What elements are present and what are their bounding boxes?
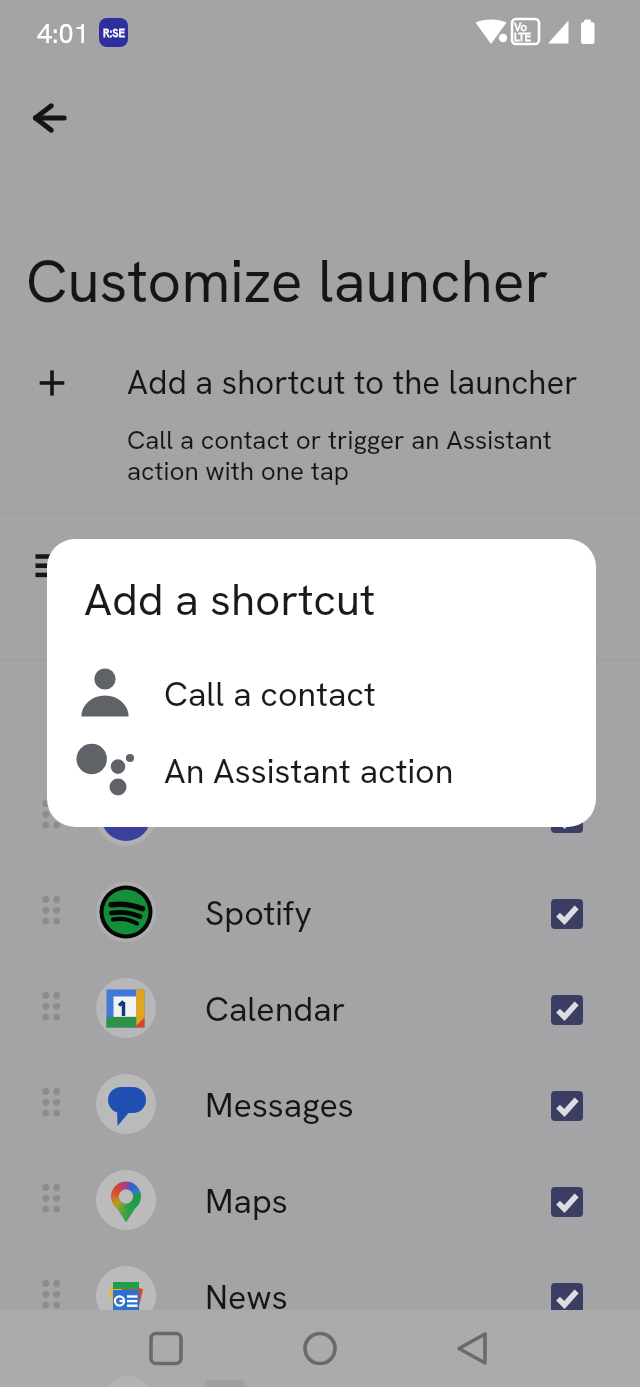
button[interactable]: Toggle xyxy=(0,768,640,864)
button[interactable]: Toggle xyxy=(551,803,583,833)
staticText: Maps xyxy=(205,1179,288,1223)
button[interactable]: Toggle Messages xyxy=(551,1091,583,1121)
button[interactable]: Messages xyxy=(0,1056,640,1152)
staticText: Calendar xyxy=(205,987,346,1031)
button[interactable]: Call a contact xyxy=(47,655,596,732)
button[interactable]: Toggle Calendar xyxy=(551,995,583,1025)
button[interactable]: Calendar xyxy=(0,960,640,1056)
staticText: Add a shortcut to the launcher xyxy=(127,361,578,404)
button[interactable]: Home xyxy=(289,1318,351,1380)
staticText: Call a contact xyxy=(164,672,376,716)
staticText: Customize launcher xyxy=(26,243,549,320)
staticText: Call a contact or trigger an Assistant a… xyxy=(127,423,552,488)
staticText: News xyxy=(205,1275,288,1319)
staticText: R:SE xyxy=(103,26,125,40)
button[interactable]: An Assistant action xyxy=(47,732,596,809)
staticText: Vo xyxy=(514,20,527,34)
button[interactable]: Back xyxy=(16,86,80,150)
button[interactable]: Maps xyxy=(0,1152,640,1248)
button[interactable]: Back xyxy=(441,1318,503,1380)
button[interactable]: Toggle Spotify xyxy=(551,899,583,929)
staticText: Spotify xyxy=(205,891,312,935)
button[interactable]: Toggle Maps xyxy=(551,1187,583,1217)
button[interactable]: Add a shortcut to the launcher xyxy=(0,346,640,512)
staticText: LTE xyxy=(514,30,532,44)
staticText: 4:01 xyxy=(37,16,89,51)
button[interactable]: Recent apps xyxy=(135,1318,197,1380)
staticText: Messages xyxy=(205,1083,354,1127)
staticText: Add a shortcut xyxy=(84,571,376,628)
staticText: An Assistant action xyxy=(164,749,454,793)
button[interactable]: Spotify xyxy=(0,864,640,960)
button[interactable]: News xyxy=(0,1248,640,1344)
button[interactable]: Toggle News xyxy=(551,1283,583,1313)
